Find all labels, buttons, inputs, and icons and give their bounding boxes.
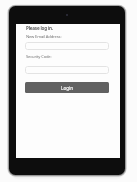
button[interactable]: Login	[25, 82, 109, 93]
staticText: Please log in.	[26, 25, 53, 31]
staticText: New Email Address:	[26, 34, 62, 40]
button[interactable]: New Email Address input field	[25, 42, 109, 50]
staticText: Login	[61, 85, 74, 91]
staticText: Security Code:	[26, 54, 52, 60]
button[interactable]: Security Code input field	[25, 66, 109, 74]
